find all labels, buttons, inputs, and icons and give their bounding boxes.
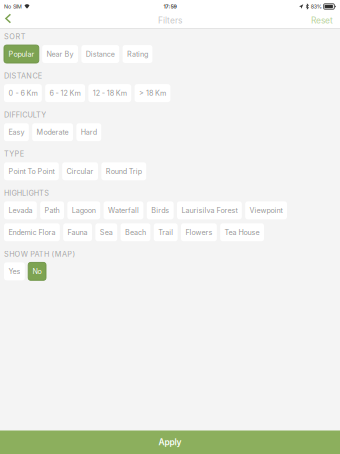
button[interactable]: Beach bbox=[121, 223, 150, 241]
staticText: 0 - 6 Km bbox=[8, 89, 37, 97]
button[interactable]: Sea bbox=[95, 223, 117, 241]
staticText: No SIM bbox=[4, 3, 22, 10]
button[interactable]: Point To Point bbox=[4, 162, 59, 180]
staticText: Flowers bbox=[185, 228, 212, 237]
staticText: Waterfall bbox=[108, 206, 139, 215]
staticText: Near By bbox=[47, 50, 74, 58]
button[interactable]: Endemic Flora bbox=[4, 223, 60, 241]
staticText: 83% bbox=[311, 3, 322, 10]
staticText: Tea House bbox=[225, 228, 260, 237]
staticText: Levada bbox=[8, 206, 32, 215]
button[interactable]: > 18 Km bbox=[135, 84, 170, 102]
staticText: Birds bbox=[151, 206, 169, 215]
staticText: Round Trip bbox=[106, 167, 142, 176]
button[interactable]: 0 - 6 Km bbox=[4, 84, 42, 102]
staticText: SHOW PATH (MAP) bbox=[4, 249, 75, 258]
button[interactable]: Yes bbox=[4, 262, 25, 280]
staticText: Lagoon bbox=[72, 206, 96, 215]
staticText: Trail bbox=[158, 228, 173, 237]
button[interactable]: Laurisilva Forest bbox=[177, 201, 242, 219]
button[interactable]: Path bbox=[40, 201, 64, 219]
staticText: 12 - 18 Km bbox=[93, 89, 127, 97]
button[interactable]: Distance bbox=[81, 45, 119, 63]
staticText: Fauna bbox=[68, 228, 88, 237]
staticText: TYPE bbox=[4, 149, 24, 158]
staticText: Endemic Flora bbox=[8, 228, 55, 237]
staticText: Popular bbox=[8, 50, 34, 58]
button[interactable]: Circular bbox=[62, 162, 98, 180]
button[interactable]: Apply bbox=[0, 430, 340, 454]
staticText: Hard bbox=[81, 128, 97, 136]
staticText: Circular bbox=[67, 167, 94, 176]
staticText: Easy bbox=[8, 128, 24, 136]
staticText: DISTANCE bbox=[4, 71, 42, 80]
staticText: Rating bbox=[127, 50, 148, 58]
staticText: Filters bbox=[158, 15, 182, 26]
staticText: Viewpoint bbox=[250, 206, 283, 215]
button[interactable]: Easy bbox=[4, 123, 29, 141]
button[interactable]: 6 - 12 Km bbox=[45, 84, 85, 102]
button[interactable]: Moderate bbox=[32, 123, 73, 141]
staticText: Path bbox=[45, 206, 60, 215]
button[interactable]: Near By bbox=[42, 45, 78, 63]
staticText: Apply bbox=[158, 437, 181, 447]
staticText: Distance bbox=[86, 50, 115, 58]
staticText: Sea bbox=[100, 228, 113, 237]
staticText: HIGHLIGHTS bbox=[4, 188, 49, 197]
staticText: 17:59 bbox=[163, 3, 176, 10]
staticText: Reset bbox=[311, 15, 333, 26]
button[interactable]: Trail bbox=[154, 223, 178, 241]
button[interactable]: Tea House bbox=[220, 223, 264, 241]
staticText: Laurisilva Forest bbox=[181, 206, 237, 215]
staticText: No bbox=[33, 267, 42, 276]
button[interactable]: Lagoon bbox=[67, 201, 100, 219]
button[interactable]: No bbox=[28, 262, 46, 280]
staticText: Beach bbox=[125, 228, 146, 237]
staticText: SORT bbox=[4, 32, 26, 41]
button[interactable]: Waterfall bbox=[104, 201, 143, 219]
button[interactable]: Back bbox=[0, 13, 18, 28]
button[interactable]: Reset bbox=[304, 13, 340, 28]
button[interactable]: Rating bbox=[123, 45, 152, 63]
staticText: Yes bbox=[8, 267, 20, 276]
button[interactable]: Popular bbox=[4, 45, 39, 63]
button[interactable]: Levada bbox=[4, 201, 37, 219]
button[interactable]: Viewpoint bbox=[245, 201, 287, 219]
staticText: 6 - 12 Km bbox=[50, 89, 81, 97]
button[interactable]: Round Trip bbox=[101, 162, 146, 180]
button[interactable]: Flowers bbox=[181, 223, 217, 241]
staticText: Moderate bbox=[37, 128, 69, 136]
button[interactable]: Fauna bbox=[63, 223, 92, 241]
button[interactable]: 12 - 18 Km bbox=[88, 84, 131, 102]
staticText: > 18 Km bbox=[139, 89, 166, 97]
staticText: DIFFICULTY bbox=[4, 110, 46, 119]
button[interactable]: Birds bbox=[147, 201, 174, 219]
staticText: Point To Point bbox=[8, 167, 54, 176]
button[interactable]: Hard bbox=[76, 123, 101, 141]
